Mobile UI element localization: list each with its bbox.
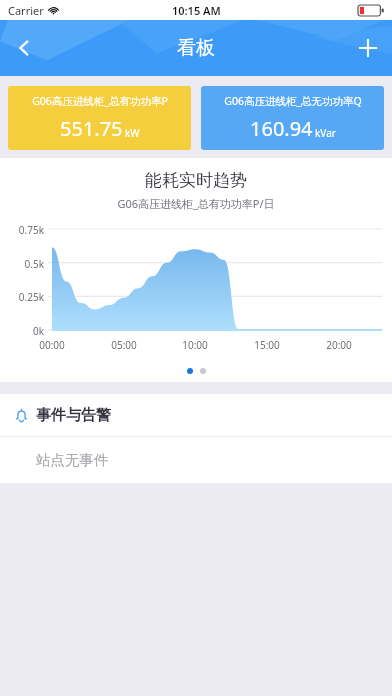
staticText: 0.5k [0,257,44,271]
button[interactable]: G06高压进线柜_总有功功率P [8,86,191,150]
staticText: 160.94 [250,115,313,142]
staticText: Carrier [8,3,44,18]
staticText: G06高压进线柜_总有功功率P [32,94,168,108]
staticText: 0.25k [0,290,44,304]
staticText: 站点无事件 [36,451,109,469]
staticText: 20:00 [317,338,361,352]
staticText: G06高压进线柜_总无功功率Q [224,94,362,108]
button[interactable]: G06高压进线柜_总无功功率Q [201,86,384,150]
staticText: 05:00 [102,338,146,352]
button[interactable]: Back [0,24,48,72]
staticText: 事件与告警 [36,406,111,425]
staticText: 10:15 AM [172,3,221,18]
staticText: 00:00 [30,338,74,352]
staticText: kW [125,126,140,140]
staticText: 15:00 [245,338,289,352]
staticText: 0.75k [0,223,44,237]
button[interactable]: 站点无事件 [0,437,392,483]
staticText: 能耗实时趋势 [0,170,392,191]
staticText: 看板 [177,36,215,60]
staticText: kVar [315,126,336,140]
staticText: 551.75 [60,115,123,142]
staticText: G06高压进线柜_总有功功率P/日 [0,196,392,211]
button[interactable]: 事件与告警 [0,394,392,436]
staticText: 0k [0,324,44,338]
staticText: 10:00 [173,338,217,352]
button[interactable]: Add [344,24,392,72]
